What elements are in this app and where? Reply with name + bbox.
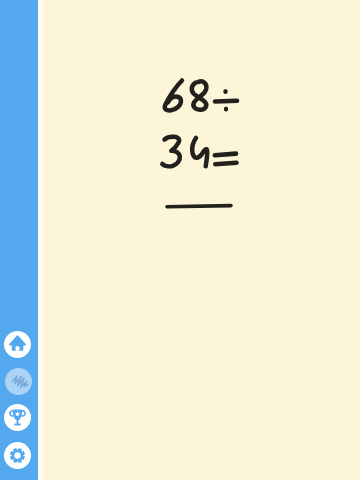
button[interactable] [4, 404, 31, 431]
button[interactable] [5, 368, 32, 395]
button[interactable] [4, 331, 31, 358]
button[interactable] [4, 442, 31, 469]
